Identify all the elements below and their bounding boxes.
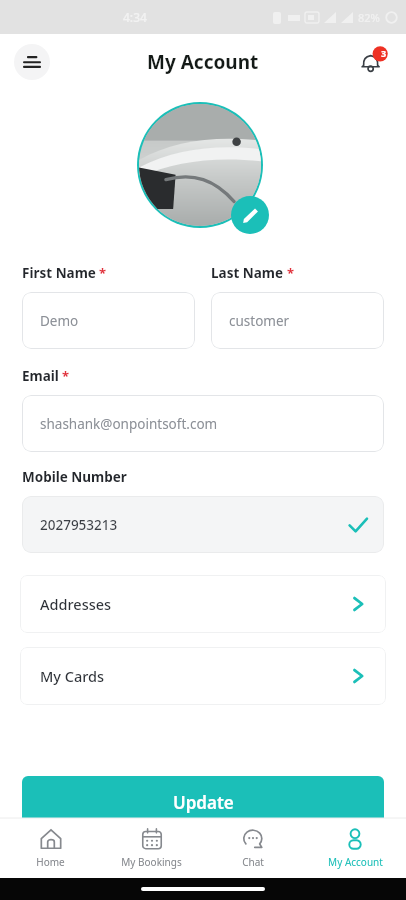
staticText: Chat bbox=[242, 855, 264, 869]
staticText: shashank@onpointsoft.com bbox=[40, 415, 218, 433]
staticText: My Account bbox=[328, 855, 383, 869]
staticText: 82% bbox=[358, 10, 380, 25]
button[interactable]: customer bbox=[211, 292, 384, 349]
staticText: Demo bbox=[40, 312, 79, 330]
staticText: Email bbox=[22, 367, 59, 385]
staticText: Home bbox=[36, 855, 65, 869]
button[interactable]: Update bbox=[22, 776, 384, 828]
staticText: 2027953213 bbox=[40, 516, 118, 534]
staticText: * bbox=[62, 367, 70, 385]
staticText: * bbox=[287, 264, 295, 282]
button[interactable]: My Account bbox=[304, 818, 406, 878]
button[interactable]: My Bookings bbox=[101, 818, 202, 878]
staticText: Mobile Number bbox=[22, 468, 127, 486]
staticText: Last Name bbox=[211, 264, 284, 282]
staticText: My Account bbox=[147, 49, 259, 75]
staticText: Update bbox=[173, 791, 234, 814]
button[interactable]: shashank@onpointsoft.com bbox=[22, 395, 384, 452]
button[interactable]: Home bbox=[0, 818, 101, 878]
staticText: Addresses bbox=[40, 594, 112, 614]
button[interactable]: Demo bbox=[22, 292, 195, 349]
button[interactable]: 2027953213 bbox=[22, 496, 384, 553]
staticText: First Name bbox=[22, 264, 96, 282]
staticText: My Bookings bbox=[121, 855, 182, 869]
staticText: 3 bbox=[381, 47, 387, 59]
button[interactable]: My Cards bbox=[20, 647, 386, 705]
button[interactable] bbox=[139, 104, 261, 226]
button[interactable]: Edit profile photo bbox=[231, 196, 269, 234]
staticText: * bbox=[99, 264, 107, 282]
staticText: 4:34 bbox=[123, 9, 147, 25]
button[interactable]: Notifications bbox=[354, 44, 390, 80]
staticText: customer bbox=[229, 312, 290, 330]
button[interactable]: Chat bbox=[202, 818, 304, 878]
button[interactable]: Menu bbox=[14, 44, 50, 80]
button[interactable]: Addresses bbox=[20, 575, 386, 633]
staticText: My Cards bbox=[40, 666, 105, 686]
